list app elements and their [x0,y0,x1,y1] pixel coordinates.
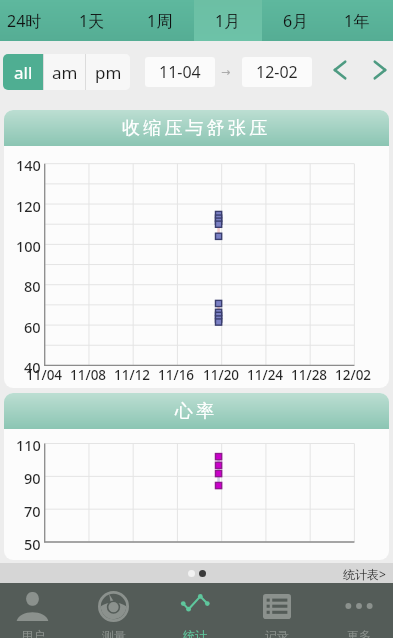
staticText: 11/16 [158,366,195,384]
staticText: 12/02 [335,366,372,384]
staticText: 12-02 [256,61,298,83]
button[interactable]: Next range [367,57,393,83]
staticText: 11/24 [247,366,284,384]
staticText: 心率 [175,400,218,423]
button[interactable]: 记录 [235,583,314,638]
staticText: 1年 [344,10,370,32]
button[interactable]: 1天 [58,0,126,41]
staticText: 120 [16,196,41,216]
staticText: 50 [24,534,41,554]
button[interactable]: 11-04 [145,57,215,87]
staticText: 测量 [102,628,126,638]
staticText: 收缩压与舒张压 [122,117,271,140]
staticText: 统计 [183,628,207,638]
staticText: 用户 [21,628,45,638]
staticText: 记录 [265,628,289,638]
button[interactable]: all [3,54,43,90]
button[interactable]: 1月 [194,0,262,41]
staticText: 统计表> [343,566,386,582]
button[interactable]: 1周 [126,0,194,41]
staticText: all [14,61,33,84]
staticText: 110 [16,435,41,455]
staticText: 140 [16,155,41,175]
staticText: 11/28 [291,366,328,384]
staticText: 40 [24,357,41,377]
staticText: → [221,66,231,79]
staticText: 1周 [147,10,173,32]
staticText: 70 [24,501,41,521]
button[interactable]: Previous range [327,57,353,83]
button[interactable]: 12-02 [242,57,312,87]
button[interactable]: pm [86,54,130,90]
button[interactable]: 6月 [262,0,330,41]
button[interactable]: am [44,54,85,90]
button[interactable]: 统计 [156,583,235,638]
staticText: 60 [24,317,41,337]
button[interactable]: 24时 [0,0,58,41]
staticText: 1天 [79,10,105,32]
button[interactable]: 用户 [0,583,78,638]
button[interactable]: 测量 [78,583,156,638]
staticText: 6月 [283,10,309,32]
staticText: pm [95,61,122,84]
staticText: 90 [24,468,41,488]
staticText: 24时 [7,10,42,32]
staticText: 11/08 [70,366,107,384]
staticText: 80 [24,276,41,296]
staticText: 11-04 [159,61,201,83]
staticText: 更多 [347,628,371,638]
staticText: 100 [16,236,41,256]
button[interactable]: 更多 [314,583,393,638]
staticText: 11/12 [114,366,151,384]
staticText: 11/04 [26,366,63,384]
staticText: 11/20 [203,366,240,384]
staticText: am [52,61,78,84]
button[interactable]: 1年 [330,0,383,41]
staticText: 1月 [215,10,241,32]
